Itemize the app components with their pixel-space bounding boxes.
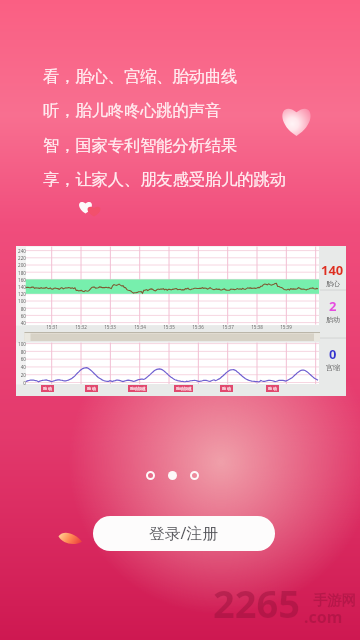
staticText: 60 <box>16 313 26 319</box>
staticText: 15:32 <box>70 324 92 330</box>
staticText: 胎 动 <box>43 386 52 391</box>
staticText: 15:37 <box>217 324 239 330</box>
staticText: 100 <box>16 298 26 304</box>
staticText: 0 <box>329 345 337 363</box>
staticText: 40 <box>16 320 26 326</box>
staticText: 15:35 <box>158 324 180 330</box>
staticText: 15:34 <box>129 324 151 330</box>
staticText: 200 <box>16 262 26 268</box>
button[interactable]: Current page <box>168 471 177 480</box>
staticText: 15:39 <box>275 324 297 330</box>
staticText: 手游网 <box>313 591 356 609</box>
button[interactable]: Page indicator <box>190 471 199 480</box>
staticText: 胎动加速 <box>176 386 192 391</box>
staticText: 2265 <box>213 577 300 629</box>
staticText: 140 <box>321 261 344 279</box>
staticText: 120 <box>16 291 26 297</box>
staticText: 0 <box>16 380 26 386</box>
staticText: 15:33 <box>99 324 121 330</box>
staticText: 胎 动 <box>87 386 96 391</box>
staticText: 60 <box>16 356 26 362</box>
staticText: 胎 动 <box>268 386 277 391</box>
staticText: 240 <box>16 248 26 254</box>
staticText: 听，胎儿咚咚心跳的声音 <box>43 100 222 120</box>
staticText: 智，国家专利智能分析结果 <box>43 135 238 155</box>
staticText: 登录/注册 <box>149 522 219 544</box>
staticText: 15:36 <box>187 324 209 330</box>
staticText: 享，让家人、朋友感受胎儿的跳动 <box>43 169 286 189</box>
staticText: 宫缩 <box>326 363 340 372</box>
staticText: 220 <box>16 255 26 261</box>
staticText: 15:38 <box>246 324 268 330</box>
button[interactable]: 登录/注册 <box>93 516 275 551</box>
staticText: 80 <box>16 306 26 312</box>
staticText: 160 <box>16 277 26 283</box>
staticText: 看，胎心、宫缩、胎动曲线 <box>43 66 238 86</box>
staticText: 胎心 <box>326 279 340 288</box>
staticText: 2 <box>329 297 337 315</box>
staticText: 100 <box>16 341 26 347</box>
staticText: .com <box>304 606 343 628</box>
staticText: 胎动 <box>326 315 340 324</box>
staticText: 140 <box>16 284 26 290</box>
staticText: 180 <box>16 270 26 276</box>
staticText: 胎 动 <box>222 386 231 391</box>
staticText: 20 <box>16 372 26 378</box>
staticText: 胎动加速 <box>130 386 146 391</box>
staticText: 15:31 <box>41 324 63 330</box>
staticText: 80 <box>16 349 26 355</box>
button[interactable]: Page indicator <box>146 471 155 480</box>
staticText: 40 <box>16 364 26 370</box>
